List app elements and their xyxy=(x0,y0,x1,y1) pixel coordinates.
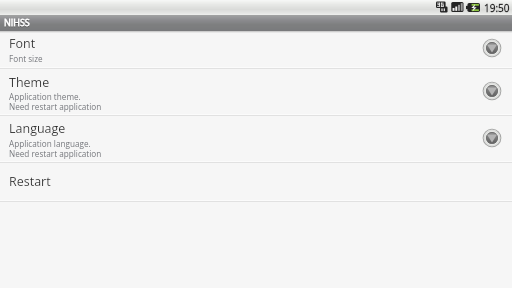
button[interactable]: Language xyxy=(0,116,512,162)
button[interactable]: Font xyxy=(0,33,512,68)
button[interactable]: Open selection list xyxy=(482,128,502,148)
staticText: Language xyxy=(9,120,66,137)
button[interactable]: Restart xyxy=(0,163,512,201)
staticText: Theme xyxy=(9,74,50,91)
staticText: Font size xyxy=(9,53,43,64)
staticText: NIHSS xyxy=(4,17,30,29)
button[interactable]: Open selection list xyxy=(482,38,502,58)
button[interactable]: Theme xyxy=(0,69,512,115)
staticText: Need restart application xyxy=(9,101,102,112)
staticText: 19:50 xyxy=(484,1,510,15)
staticText: Application theme. xyxy=(9,91,81,102)
staticText: Application language. xyxy=(9,138,91,149)
staticText: Need restart application xyxy=(9,148,102,159)
staticText: Restart xyxy=(9,173,51,190)
staticText: Font xyxy=(9,35,36,52)
staticText: NIHSS xyxy=(4,16,30,28)
button[interactable]: Open selection list xyxy=(482,81,502,101)
